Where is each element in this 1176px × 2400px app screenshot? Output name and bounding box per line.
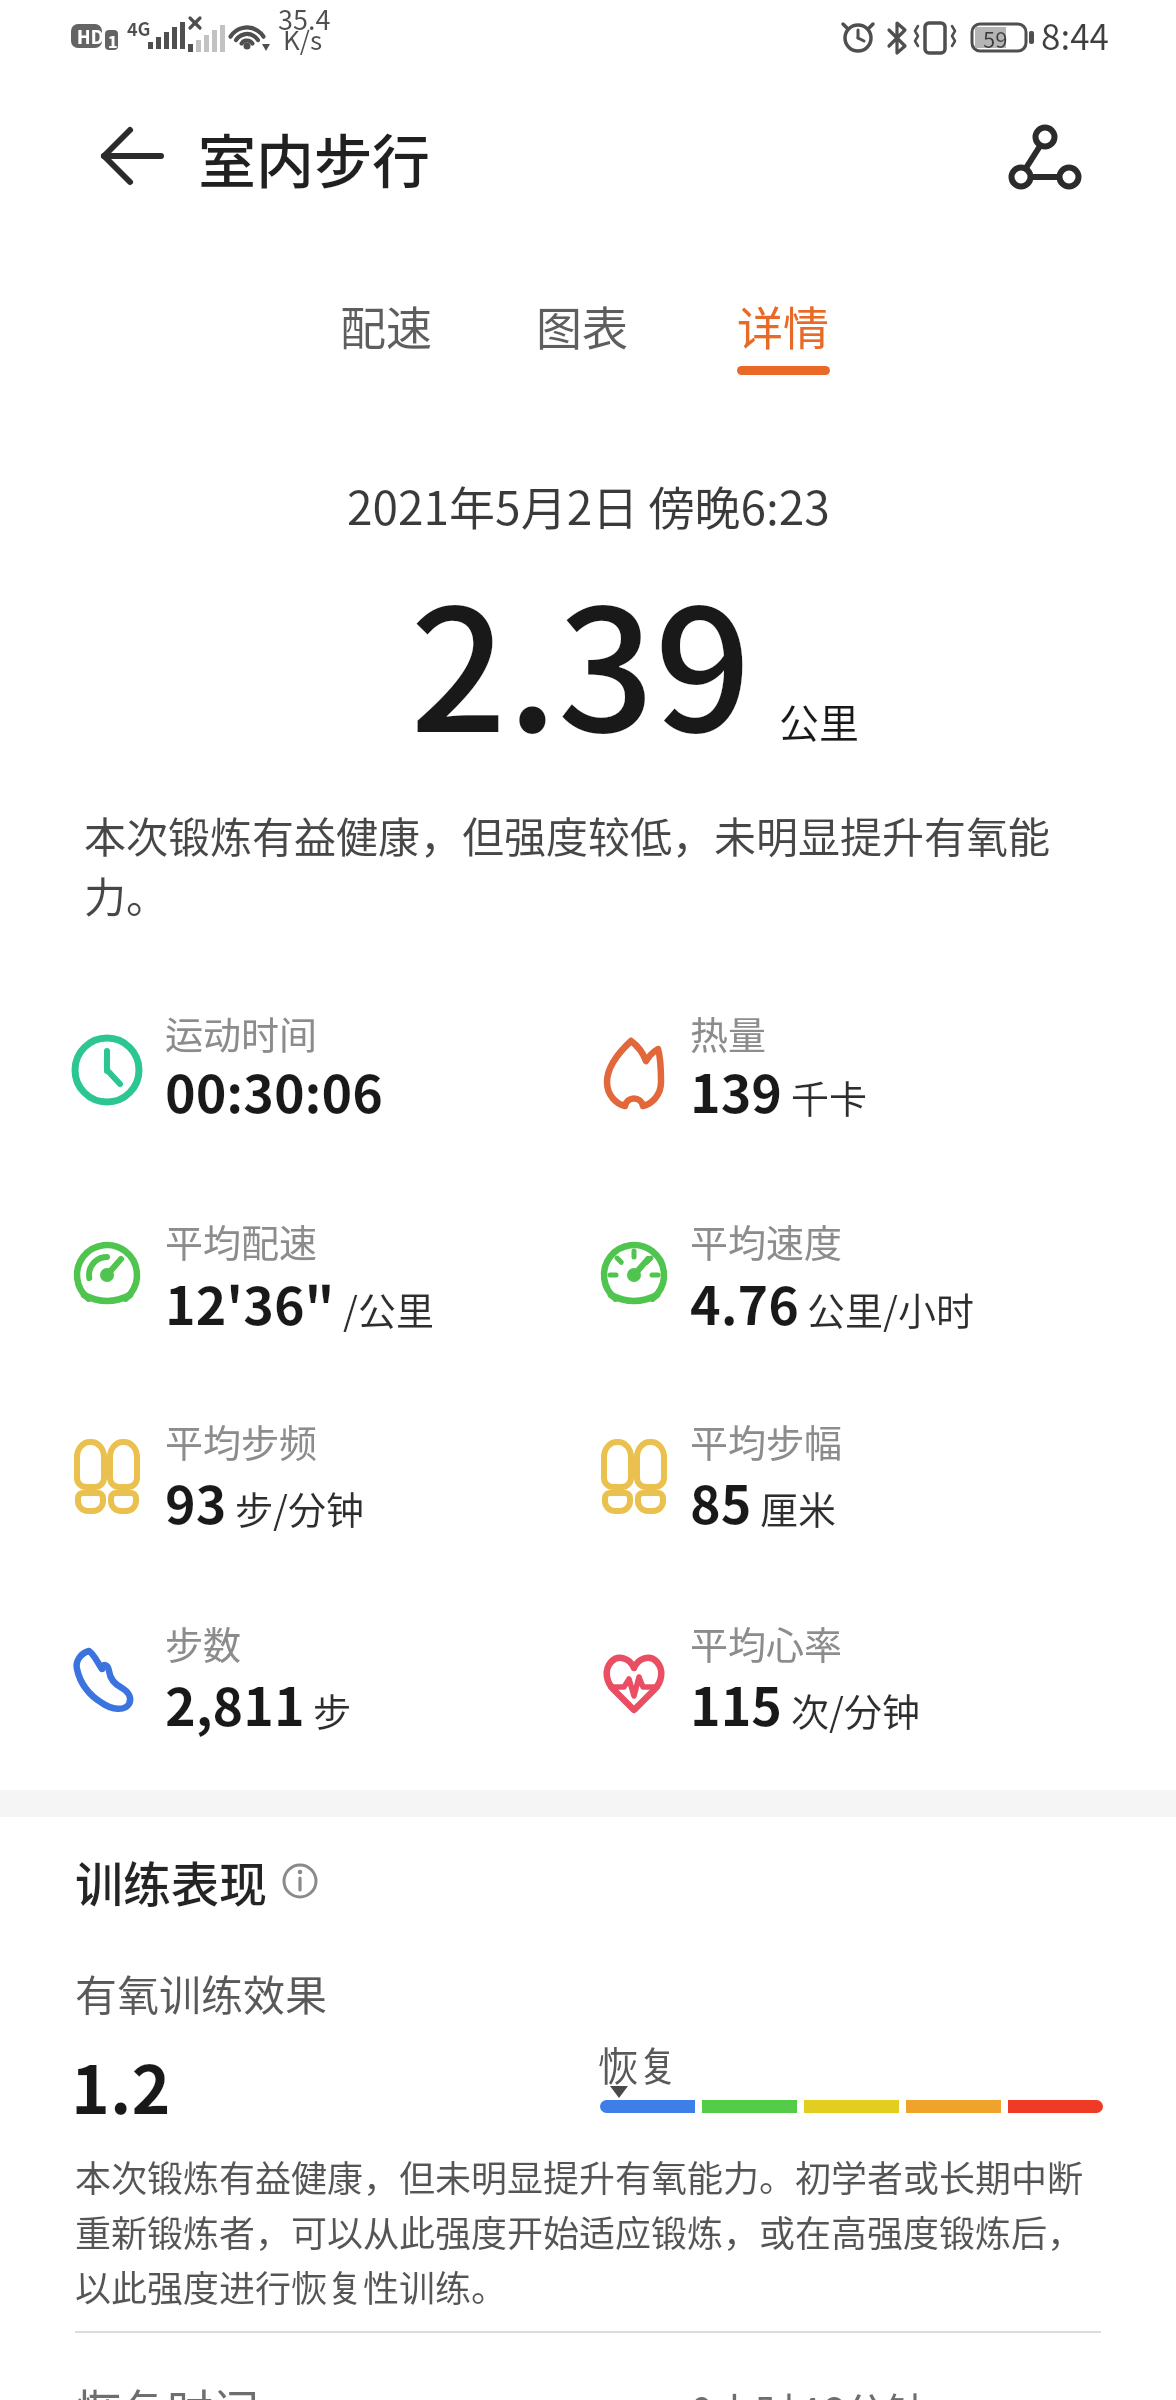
staticText: 93 [165,1464,227,1539]
staticText: 平均速度 [690,1213,843,1268]
staticText: 训练表现 [75,1846,268,1916]
staticText: 恢复时间 [75,2375,259,2400]
staticText: 1.2 [71,2037,171,2133]
staticText: HD [77,23,104,49]
staticText: 配速 [340,292,432,359]
button[interactable] [995,120,1095,195]
button[interactable] [80,120,180,195]
button[interactable] [330,290,460,365]
staticText: 本次锻炼有益健康，但强度较低，未明显提升有氧能 力。 [84,804,1051,925]
staticText: 0小时46分钟 [690,2380,928,2400]
staticText: 室内步行 [198,116,431,200]
staticText: 平均配速 [165,1213,318,1268]
staticText: 公里/小时 [807,1281,974,1336]
staticText: /公里 [343,1281,434,1336]
staticText: 公里 [779,692,859,750]
staticText: 12'36" [165,1265,335,1340]
staticText: 4G [127,15,151,41]
staticText: 平均步频 [165,1413,318,1468]
staticText: 热量 [690,1005,767,1060]
button[interactable] [525,290,655,365]
staticText: 139 [690,1053,783,1128]
staticText: 115 [690,1666,783,1741]
staticText: 厘米 [760,1480,837,1535]
staticText: 85 [690,1464,752,1539]
staticText: 有氧训练效果 [75,1962,328,2023]
staticText: 本次锻炼有益健康，但未明显提升有氧能力。初学者或长期中断 重新锻炼者，可以从此强… [75,2150,1084,2312]
staticText: 2.39 [410,535,752,781]
staticText: 步 [313,1682,352,1737]
staticText: 步/分钟 [235,1480,364,1535]
button[interactable] [280,1860,324,1904]
button[interactable] [720,290,850,380]
staticText: 平均步幅 [690,1413,843,1468]
staticText: 1 [108,29,118,52]
staticText: 千卡 [791,1069,868,1124]
staticText: 详情 [737,292,829,359]
staticText: 恢复 [598,2035,678,2093]
staticText: 59 [983,22,1008,54]
staticText: 4.76 [690,1265,799,1340]
staticText: 00:30:06 [165,1053,383,1128]
staticText: 8:44 [1041,9,1110,60]
staticText: 2021年5月2日 傍晚6:23 [347,472,830,539]
staticText: 次/分钟 [791,1682,920,1737]
staticText: 图表 [536,292,628,359]
staticText: K/s [283,20,323,58]
staticText: 运动时间 [165,1005,318,1060]
staticText: 平均心率 [690,1615,843,1670]
staticText: 步数 [165,1615,242,1670]
staticText: 35.4 [278,0,331,38]
staticText: 2,811 [165,1666,305,1741]
